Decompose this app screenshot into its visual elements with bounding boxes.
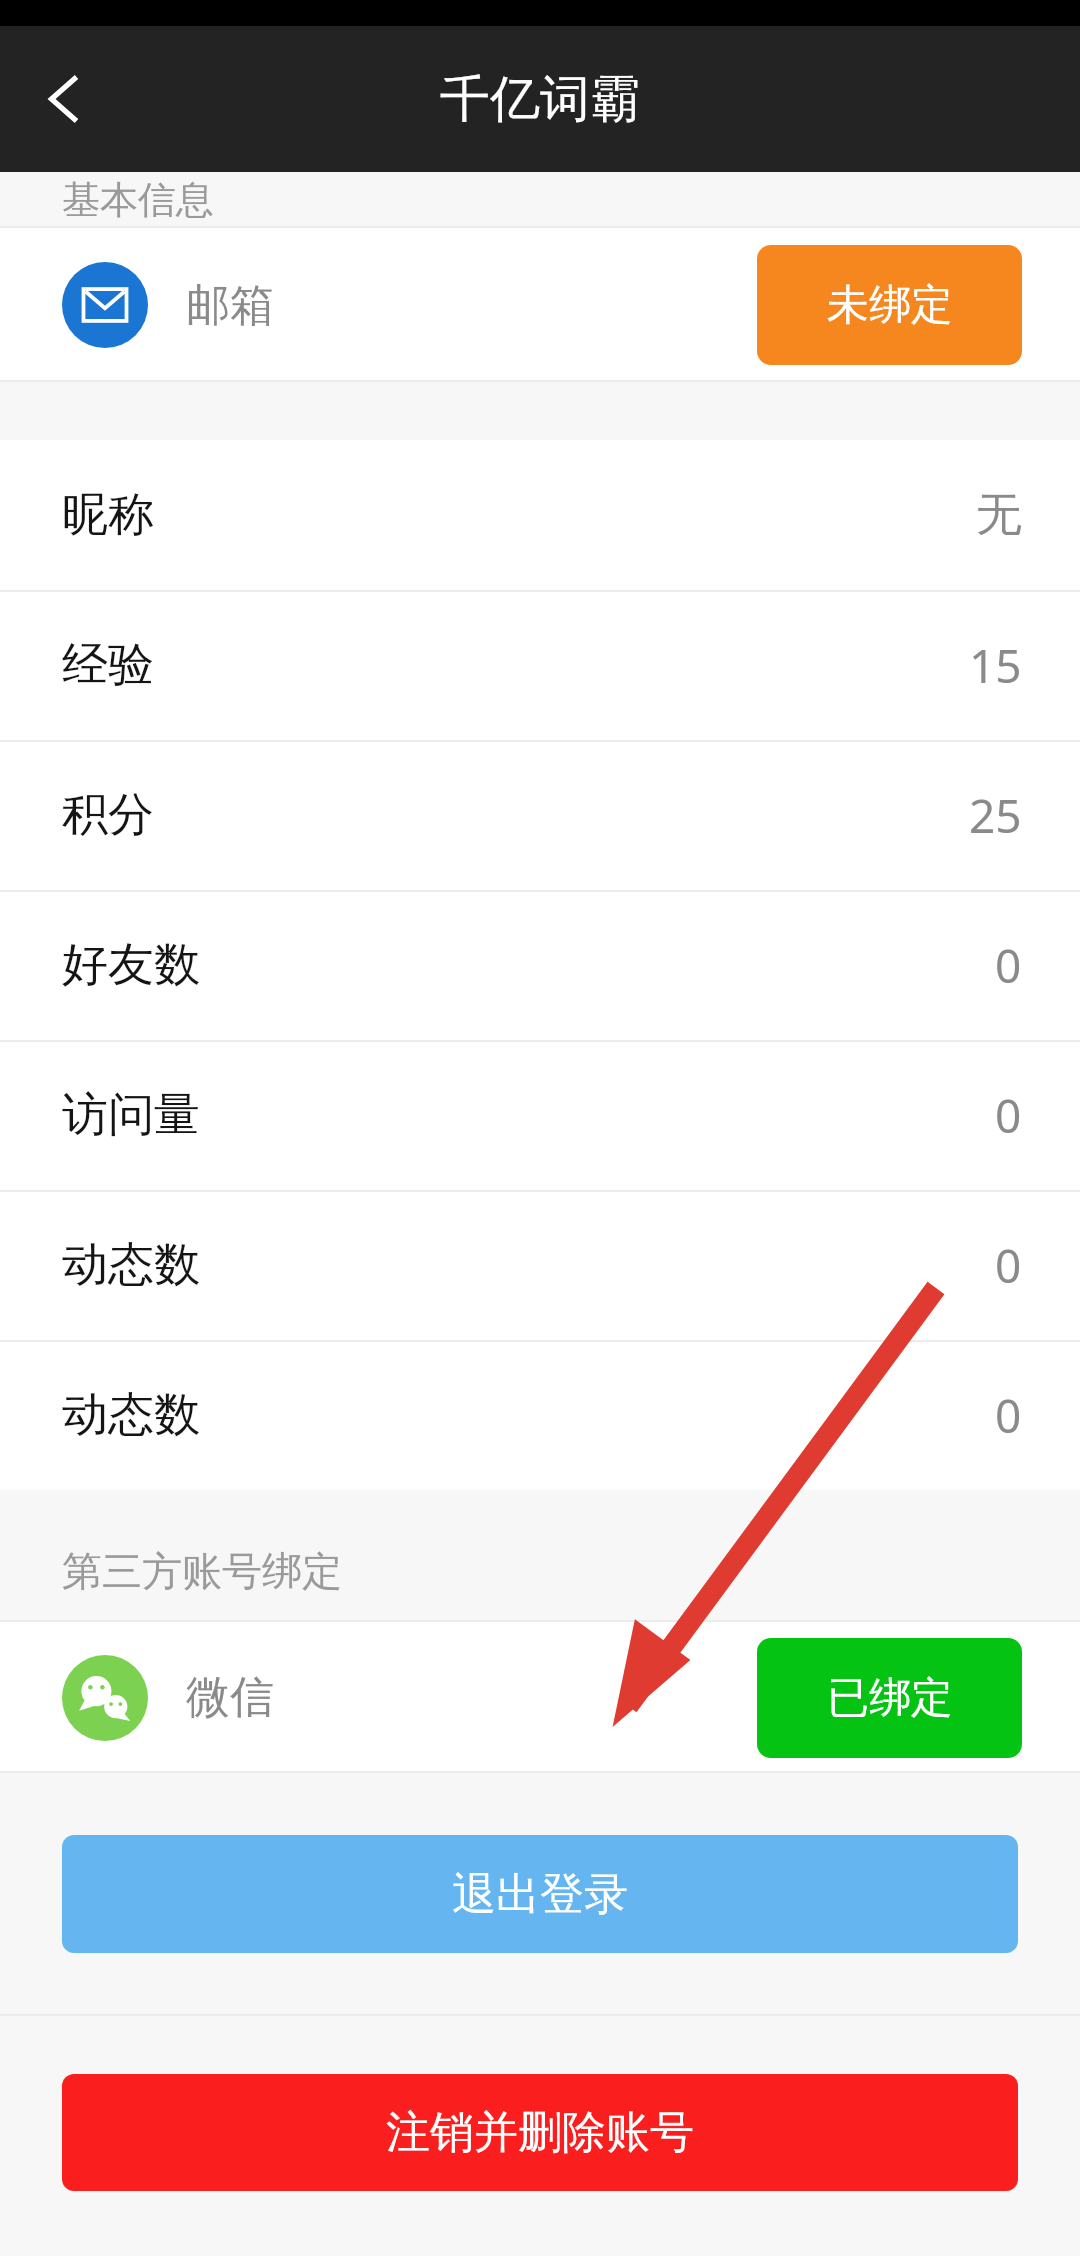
button[interactable]: 经验 <box>0 590 1080 740</box>
staticText: 动态数 <box>62 1236 200 1294</box>
staticText: 第三方账号绑定 <box>62 1546 342 1596</box>
staticText: 访问量 <box>62 1086 200 1144</box>
button[interactable]: 访问量 <box>0 1040 1080 1190</box>
staticText: 已绑定 <box>827 1672 953 1725</box>
staticText: 基本信息 <box>62 176 214 224</box>
button[interactable]: 昵称 <box>0 440 1080 590</box>
button[interactable]: 邮箱 <box>0 228 1080 382</box>
staticText: 注销并删除账号 <box>386 2105 694 2160</box>
staticText: 0 <box>995 1234 1022 1297</box>
staticText: 积分 <box>62 786 154 844</box>
staticText: 千亿词霸 <box>440 68 640 131</box>
button[interactable]: Back <box>18 53 110 145</box>
button[interactable]: 积分 <box>0 740 1080 890</box>
button[interactable]: 好友数 <box>0 890 1080 1040</box>
staticText: 0 <box>995 1084 1022 1147</box>
button[interactable]: 未绑定 <box>757 245 1022 365</box>
staticText: 动态数 <box>62 1386 200 1444</box>
staticText: 0 <box>995 934 1022 997</box>
button[interactable]: 微信 <box>0 1622 1080 1773</box>
staticText: 退出登录 <box>452 1867 628 1922</box>
staticText: 0 <box>995 1384 1022 1447</box>
button[interactable]: 注销并删除账号 <box>62 2074 1018 2191</box>
staticText: 经验 <box>62 636 154 694</box>
staticText: 15 <box>969 634 1022 697</box>
staticText: 未绑定 <box>827 279 953 332</box>
staticText: 25 <box>969 784 1022 847</box>
staticText: 无 <box>976 486 1022 544</box>
staticText: 昵称 <box>62 486 154 544</box>
staticText: 邮箱 <box>186 278 274 333</box>
button[interactable]: 动态数 <box>0 1340 1080 1490</box>
button[interactable]: 已绑定 <box>757 1638 1022 1758</box>
button[interactable]: 动态数 <box>0 1190 1080 1340</box>
staticText: 好友数 <box>62 936 200 994</box>
staticText: 微信 <box>186 1670 274 1725</box>
button[interactable]: 退出登录 <box>62 1835 1018 1953</box>
